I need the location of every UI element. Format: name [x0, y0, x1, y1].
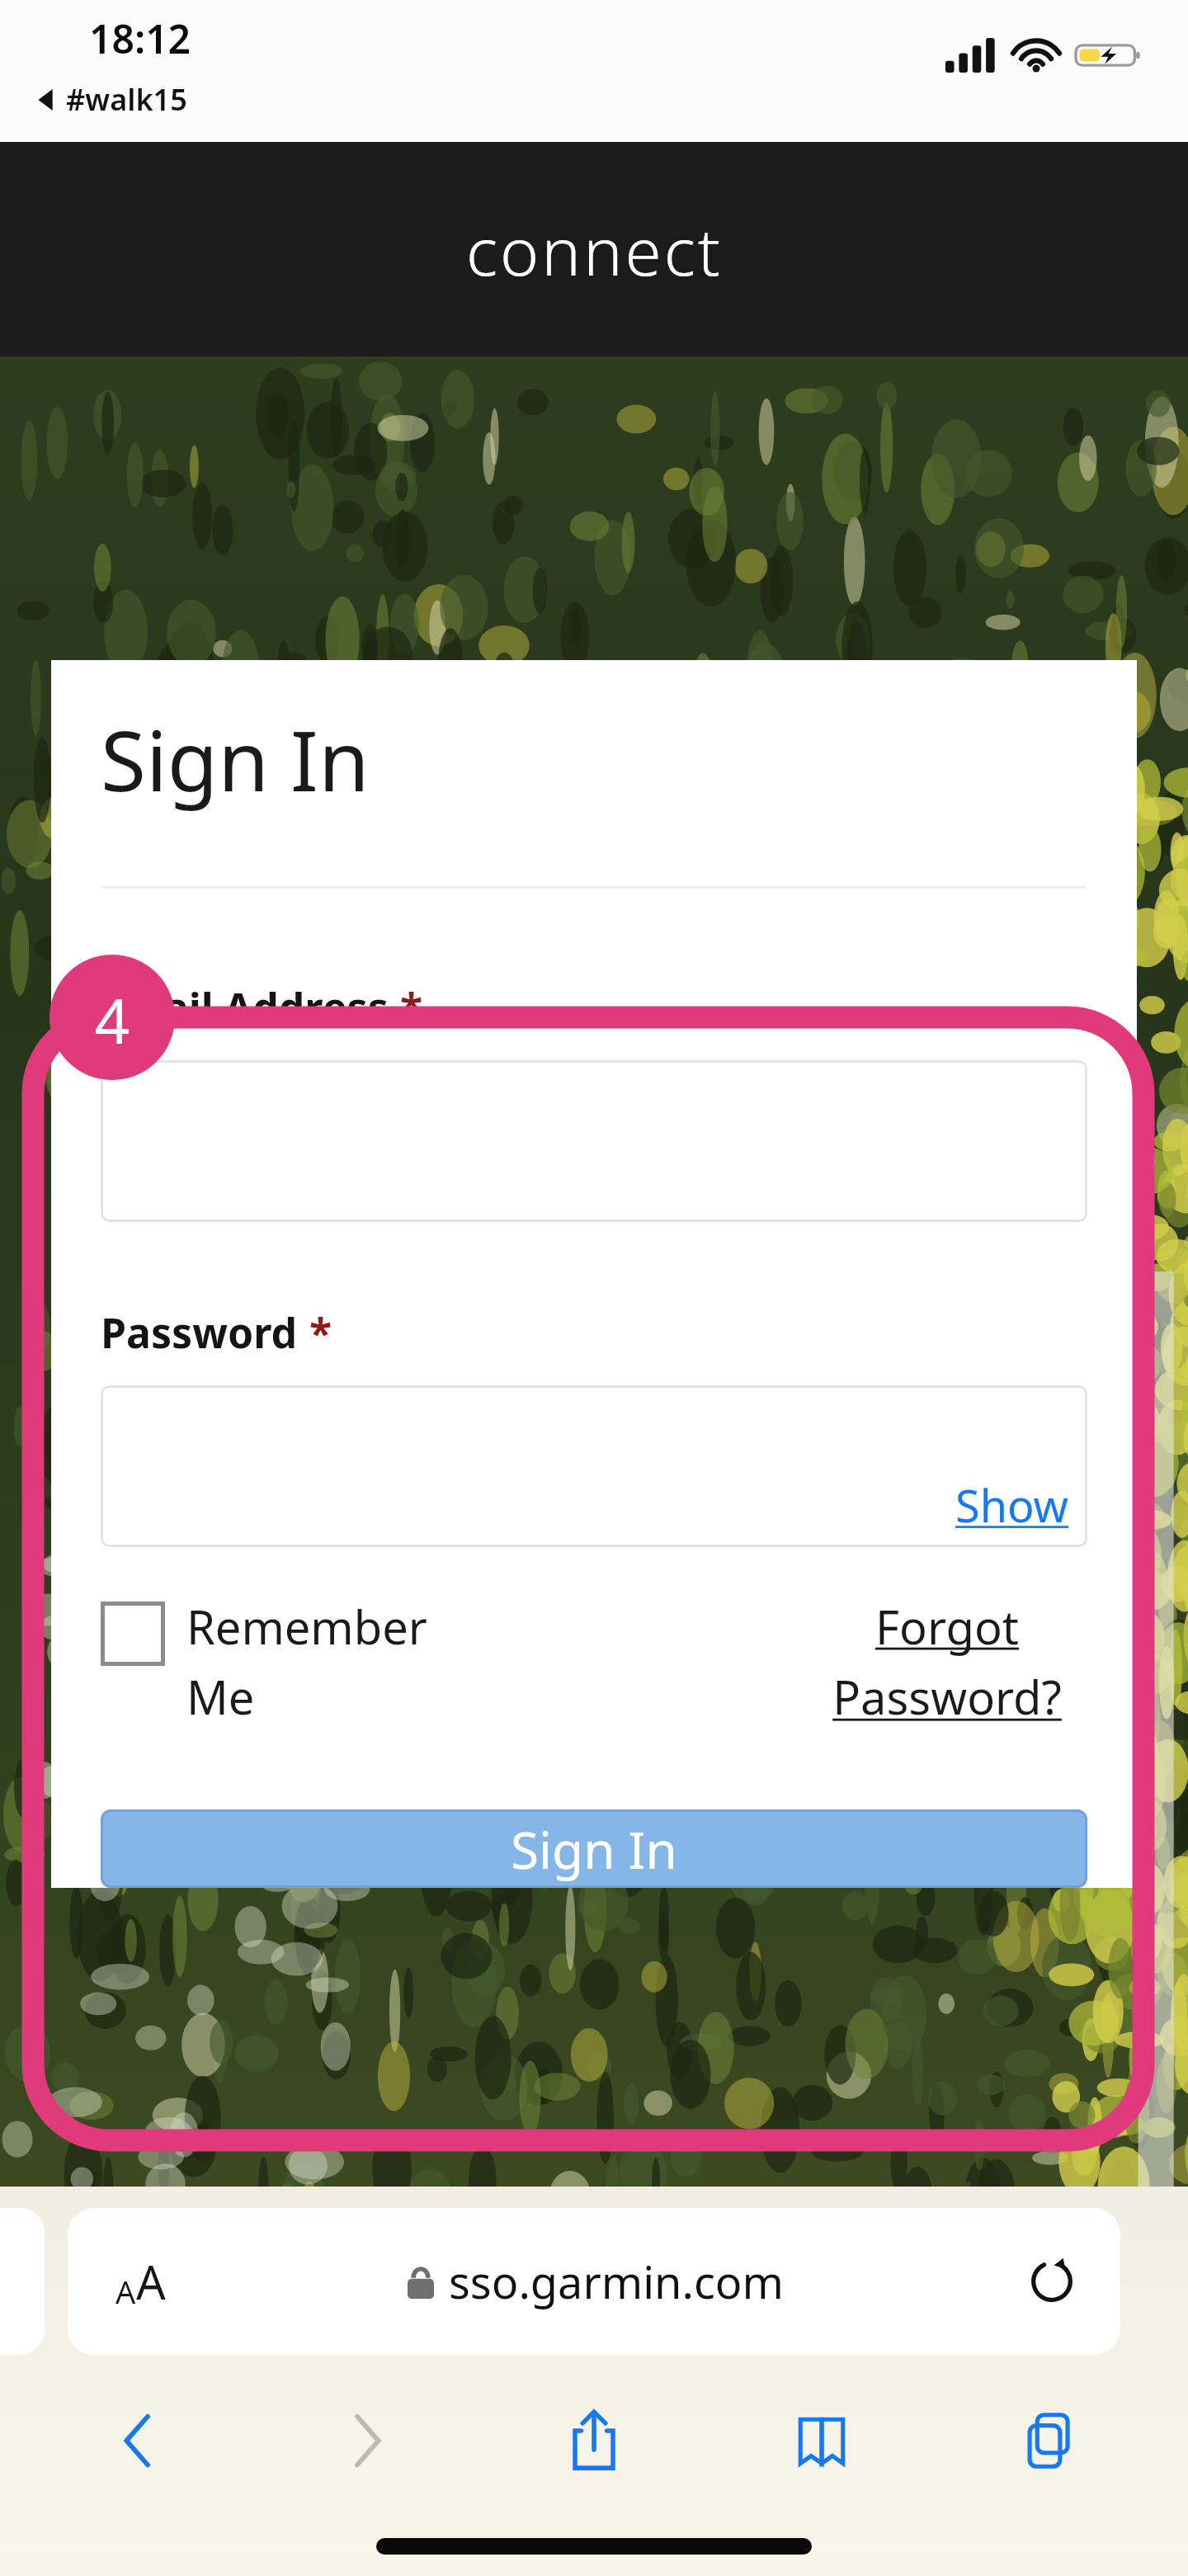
staticText: Email Address: [101, 979, 389, 1036]
staticText: Password: [101, 1305, 298, 1361]
button[interactable]: Show: [955, 1474, 1087, 1547]
button[interactable]: Bookmarks: [708, 2378, 936, 2503]
staticText: A: [115, 2270, 136, 2313]
staticText: 4: [87, 979, 137, 1062]
button[interactable]: Forward: [252, 2378, 480, 2503]
button[interactable]: Text size: [109, 2243, 172, 2319]
staticText: A: [136, 2250, 166, 2313]
staticText: *: [400, 979, 423, 1036]
button[interactable]: Remember Me: [101, 1595, 807, 1729]
staticText: *: [309, 1305, 332, 1361]
button[interactable]: Reload: [1020, 2249, 1084, 2314]
button[interactable]: Text size: [68, 2208, 1120, 2355]
button[interactable]: Forgot Password?: [807, 1595, 1087, 1729]
staticText: 18:12: [89, 12, 191, 65]
button[interactable]: Tabs: [936, 2378, 1163, 2503]
staticText: sso.garmin.com: [449, 2251, 785, 2312]
button[interactable]: Share: [480, 2378, 708, 2503]
staticText: connect: [466, 205, 723, 295]
button[interactable]: Back: [25, 2378, 252, 2503]
button[interactable]: Sign In: [101, 1809, 1087, 1888]
staticText: Sign In: [511, 1814, 677, 1884]
button[interactable]: connect: [0, 142, 1188, 356]
staticText: #walk15: [66, 79, 187, 120]
button[interactable]: Email Address field: [101, 1060, 1087, 1222]
staticText: Remember Me: [186, 1595, 467, 1729]
staticText: Sign In: [101, 703, 370, 815]
